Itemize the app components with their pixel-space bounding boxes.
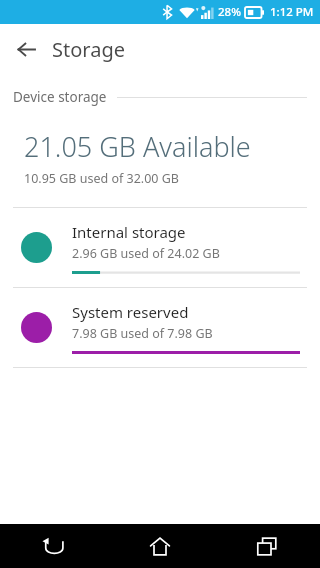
staticText: 2.96 GB used of 24.02 GB <box>72 245 220 262</box>
staticText: 7.98 GB used of 7.98 GB <box>72 325 213 342</box>
button[interactable]: Home <box>106 524 213 568</box>
button[interactable]: Back <box>6 29 46 69</box>
staticText: 10.95 GB used of 32.00 GB <box>24 170 179 187</box>
staticText: Internal storage <box>72 222 186 242</box>
button[interactable]: Recent apps <box>213 524 320 568</box>
button[interactable]: Internal storage <box>0 208 320 287</box>
staticText: 21.05 GB Available <box>24 128 251 165</box>
button[interactable]: System reserved <box>0 288 320 367</box>
staticText: System reserved <box>72 302 189 322</box>
staticText: 28% <box>218 4 241 20</box>
staticText: Storage <box>52 36 125 63</box>
staticText: Device storage <box>13 88 107 106</box>
staticText: 1:12 PM <box>270 4 314 20</box>
button[interactable]: Back <box>0 524 106 568</box>
